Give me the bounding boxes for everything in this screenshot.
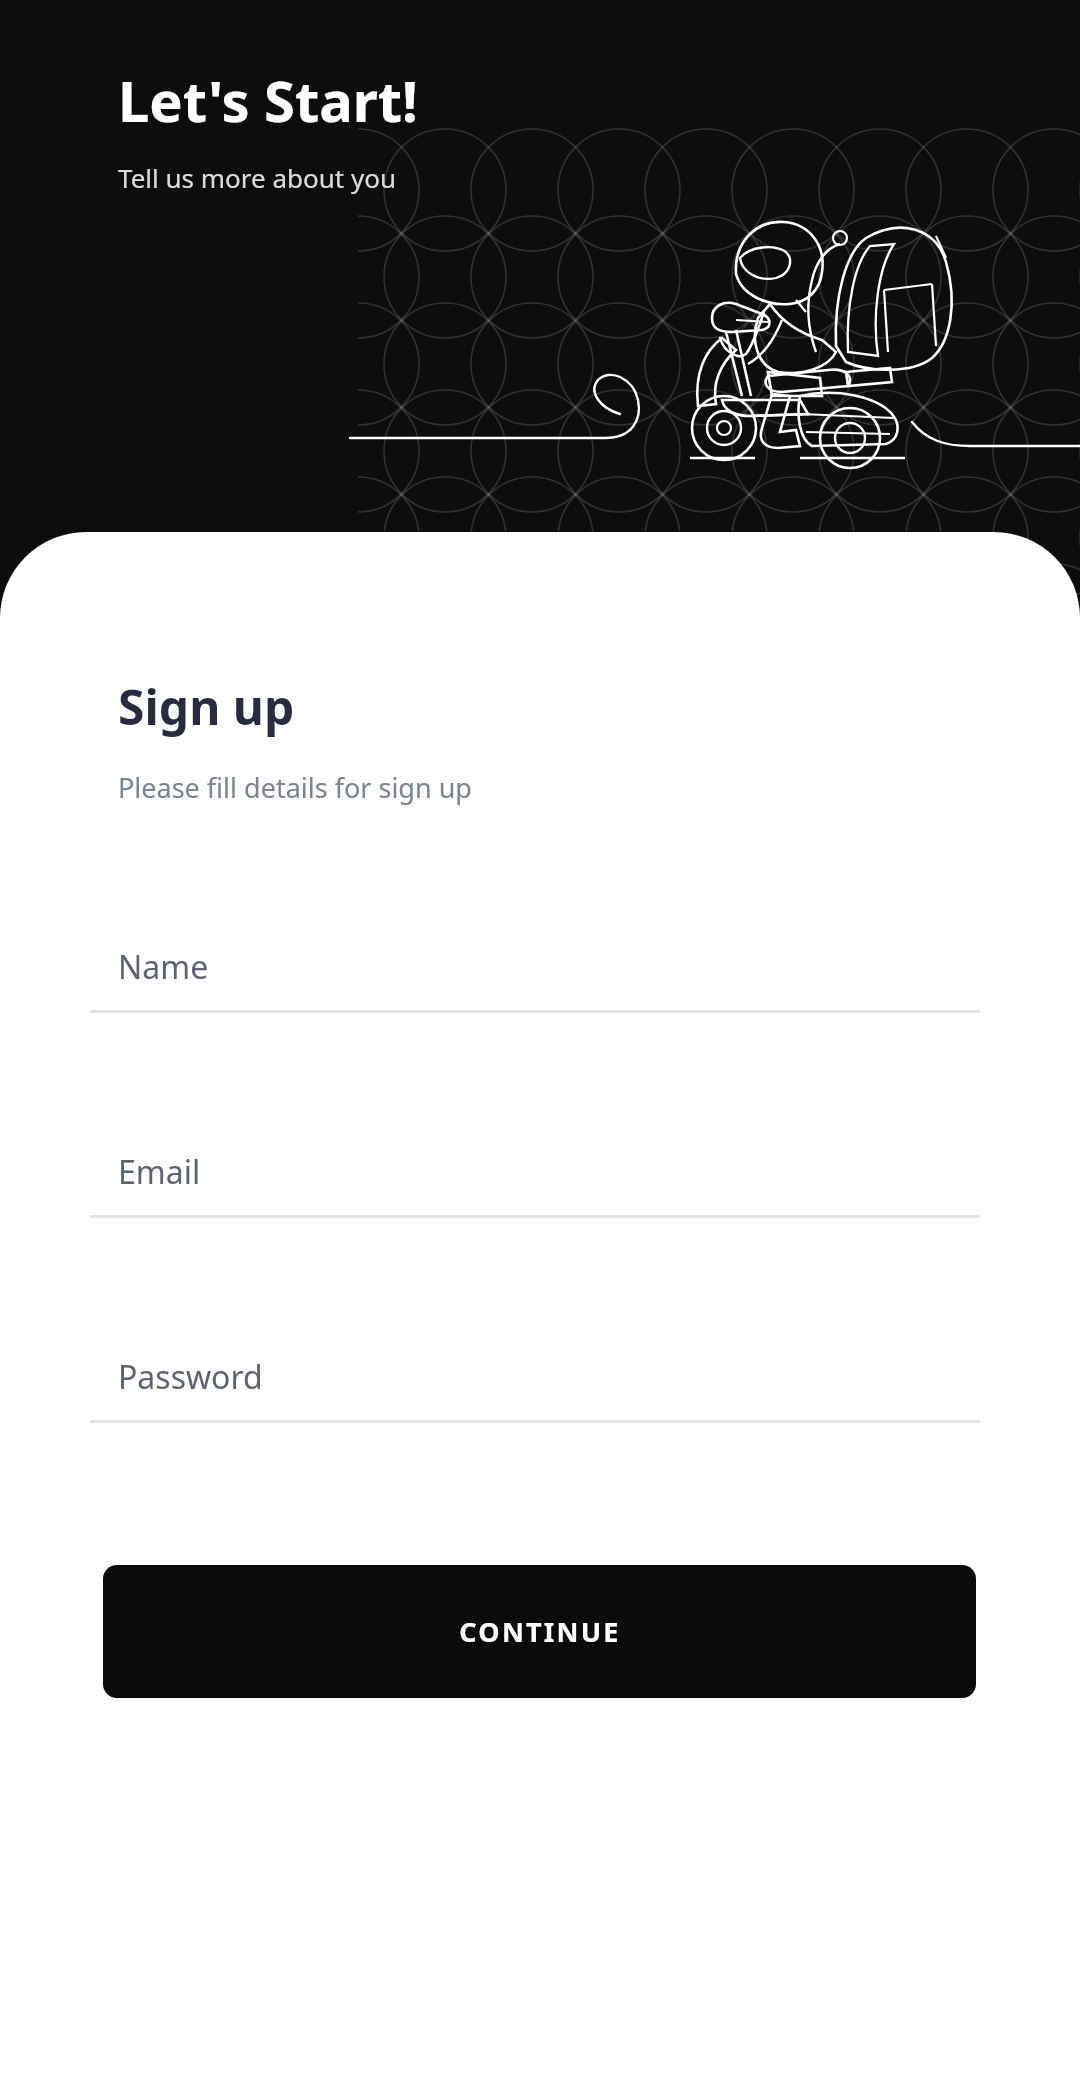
staticText: CONTINUE xyxy=(459,1613,621,1650)
staticText: Password xyxy=(118,1355,263,1399)
staticText: Sign up xyxy=(118,674,295,739)
staticText: Please fill details for sign up xyxy=(118,769,472,806)
staticText: Tell us more about you xyxy=(118,160,397,195)
button[interactable]: Email xyxy=(90,1141,980,1218)
staticText: Email xyxy=(118,1150,201,1194)
staticText: Name xyxy=(118,945,209,989)
button[interactable]: Name xyxy=(90,936,980,1013)
button[interactable]: Password xyxy=(90,1346,980,1423)
staticText: Let's Start! xyxy=(118,62,418,138)
button[interactable]: CONTINUE xyxy=(103,1565,976,1698)
